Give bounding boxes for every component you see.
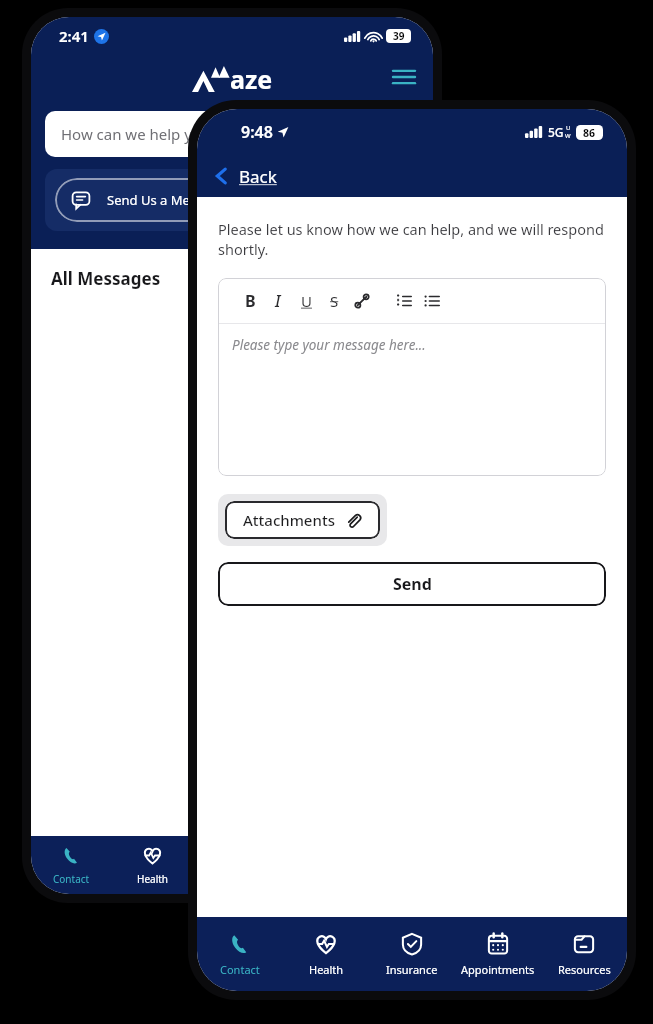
staticText: 39 bbox=[393, 29, 405, 43]
staticText: All Messages bbox=[51, 267, 161, 290]
button[interactable]: Insurance bbox=[193, 836, 273, 894]
staticText: Insurance bbox=[386, 962, 438, 977]
staticText: 2:41 bbox=[59, 26, 89, 46]
button[interactable]: Appointments bbox=[455, 917, 541, 991]
staticText: Appointments bbox=[461, 962, 535, 977]
staticText: 86 bbox=[583, 126, 596, 140]
staticText: Contact bbox=[53, 872, 90, 886]
button[interactable]: How can we help you? bbox=[45, 111, 419, 157]
button[interactable]: Bullet list bbox=[418, 287, 446, 315]
staticText: Please let us know how we can help, and … bbox=[218, 219, 606, 260]
button[interactable]: Back bbox=[197, 155, 627, 197]
staticText: W bbox=[565, 132, 571, 140]
button[interactable]: Underline bbox=[292, 287, 320, 315]
button[interactable]: B bbox=[236, 287, 264, 315]
button[interactable]: Link bbox=[348, 287, 376, 315]
button[interactable]: Send Us a Message bbox=[55, 178, 409, 222]
button[interactable]: Resources bbox=[541, 917, 627, 991]
staticText: B bbox=[245, 290, 256, 312]
staticText: Health bbox=[309, 962, 344, 977]
button[interactable]: Send bbox=[218, 562, 606, 606]
staticText: Send Us a Message bbox=[107, 191, 225, 209]
staticText: Health bbox=[137, 872, 169, 886]
button[interactable]: Menu bbox=[389, 62, 419, 92]
button[interactable]: Please type your message here... bbox=[218, 324, 606, 476]
staticText: Contact bbox=[220, 962, 260, 977]
staticText: U bbox=[566, 124, 571, 132]
staticText: Send bbox=[393, 573, 432, 595]
button[interactable]: Numbered list bbox=[390, 287, 418, 315]
staticText: How can we help you? bbox=[61, 124, 217, 144]
staticText: Please type your message here... bbox=[232, 336, 426, 354]
staticText: U bbox=[301, 291, 312, 311]
staticText: 5G bbox=[548, 124, 564, 140]
staticText: Resources bbox=[558, 962, 611, 977]
button[interactable]: Insurance bbox=[369, 917, 455, 991]
staticText: 9:48 bbox=[241, 121, 273, 143]
staticText: I bbox=[275, 290, 281, 312]
button[interactable]: Attachments bbox=[225, 501, 380, 539]
button[interactable]: Contact bbox=[197, 917, 283, 991]
staticText: Back bbox=[239, 165, 277, 188]
button[interactable]: Italic bbox=[264, 287, 292, 315]
staticText: S bbox=[330, 291, 339, 311]
button[interactable]: Contact bbox=[31, 836, 112, 894]
button[interactable]: Health bbox=[112, 836, 193, 894]
button[interactable]: Strikethrough bbox=[320, 287, 348, 315]
staticText: Attachments bbox=[243, 510, 335, 530]
staticText: aze bbox=[230, 62, 273, 92]
button[interactable]: Health bbox=[283, 917, 369, 991]
